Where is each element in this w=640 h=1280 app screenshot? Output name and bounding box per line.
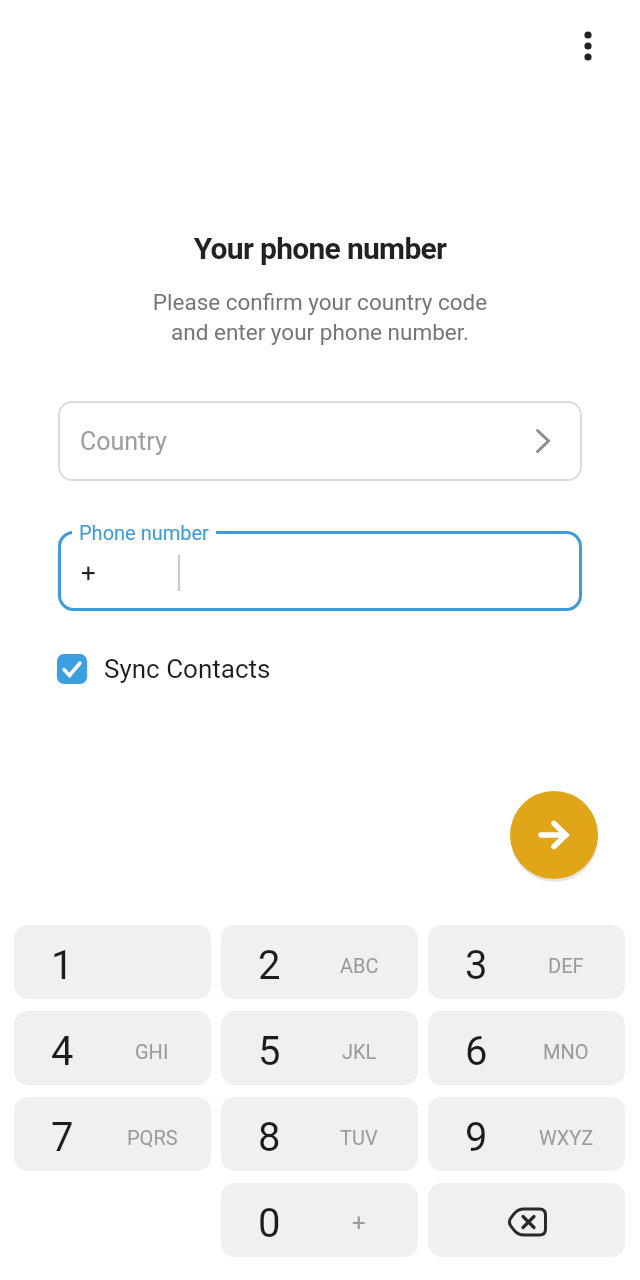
button[interactable]: 3 — [428, 925, 625, 999]
staticText: 7 — [51, 1114, 74, 1161]
staticText: Your phone number — [0, 231, 640, 266]
button[interactable]: 9 — [428, 1097, 625, 1171]
staticText: + — [352, 1209, 366, 1237]
staticText: 6 — [465, 1028, 488, 1075]
staticText: 5 — [258, 1028, 281, 1075]
button[interactable] — [564, 10, 612, 82]
staticText: PQRS — [127, 1126, 178, 1149]
button[interactable] — [510, 791, 598, 879]
staticText: JKL — [342, 1040, 377, 1063]
staticText: Please confirm your country code and ent… — [0, 289, 640, 345]
button[interactable] — [428, 1183, 625, 1257]
staticText: DEF — [548, 954, 584, 977]
staticText: GHI — [135, 1040, 169, 1063]
staticText: 0 — [258, 1200, 281, 1247]
button[interactable]: 5 — [221, 1011, 418, 1085]
button[interactable]: Country — [58, 401, 582, 481]
staticText: 4 — [51, 1028, 74, 1075]
staticText: Phone number — [79, 521, 209, 544]
button[interactable]: Sync Contacts — [57, 654, 271, 684]
staticText: 2 — [258, 942, 281, 989]
button[interactable]: 7 — [14, 1097, 211, 1171]
button[interactable]: 0 — [221, 1183, 418, 1257]
staticText: MNO — [543, 1040, 589, 1063]
staticText: 1 — [51, 942, 74, 989]
staticText: 3 — [465, 942, 488, 989]
staticText: + — [81, 558, 96, 588]
button[interactable]: 6 — [428, 1011, 625, 1085]
staticText: 9 — [465, 1114, 488, 1161]
staticText: TUV — [340, 1126, 378, 1149]
button[interactable]: 2 — [221, 925, 418, 999]
button[interactable]: 1 — [14, 925, 211, 999]
staticText: ABC — [340, 954, 379, 977]
button[interactable]: 8 — [221, 1097, 418, 1171]
staticText: WXYZ — [539, 1126, 594, 1149]
staticText: Sync Contacts — [104, 654, 271, 684]
button[interactable]: 4 — [14, 1011, 211, 1085]
staticText: 8 — [258, 1114, 281, 1161]
staticText: Country — [80, 427, 167, 456]
